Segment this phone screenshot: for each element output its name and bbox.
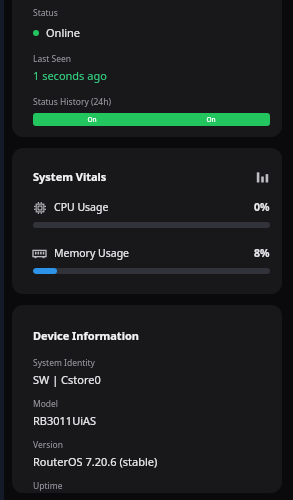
staticText: RB3011UiAS xyxy=(33,413,97,428)
staticText: CPU Usage xyxy=(54,200,109,214)
staticText: Model xyxy=(33,398,59,410)
staticText: Last Seen xyxy=(33,53,72,65)
staticText: Memory Usage xyxy=(54,246,130,260)
staticText: On xyxy=(206,115,216,124)
button[interactable]: Status xyxy=(12,0,282,137)
staticText: Device Information xyxy=(33,328,139,343)
staticText: Version xyxy=(33,439,63,451)
staticText: System Identity xyxy=(33,357,95,369)
staticText: System Vitals xyxy=(33,169,107,184)
button[interactable]: On xyxy=(33,113,270,126)
staticText: Online xyxy=(46,25,81,40)
staticText: On xyxy=(87,115,97,124)
staticText: Uptime xyxy=(33,480,63,492)
staticText: SW | Cstore0 xyxy=(33,372,101,387)
staticText: Status xyxy=(33,7,58,19)
button[interactable]: Device Information xyxy=(12,305,282,493)
staticText: RouterOS 7.20.6 (stable) xyxy=(33,454,158,469)
staticText: 8% xyxy=(254,246,270,260)
button[interactable]: System Vitals xyxy=(12,148,282,294)
staticText: 0% xyxy=(254,200,270,214)
staticText: 1 seconds ago xyxy=(33,68,107,83)
staticText: Status History (24h) xyxy=(33,96,112,108)
button[interactable]: Charts xyxy=(254,168,270,184)
